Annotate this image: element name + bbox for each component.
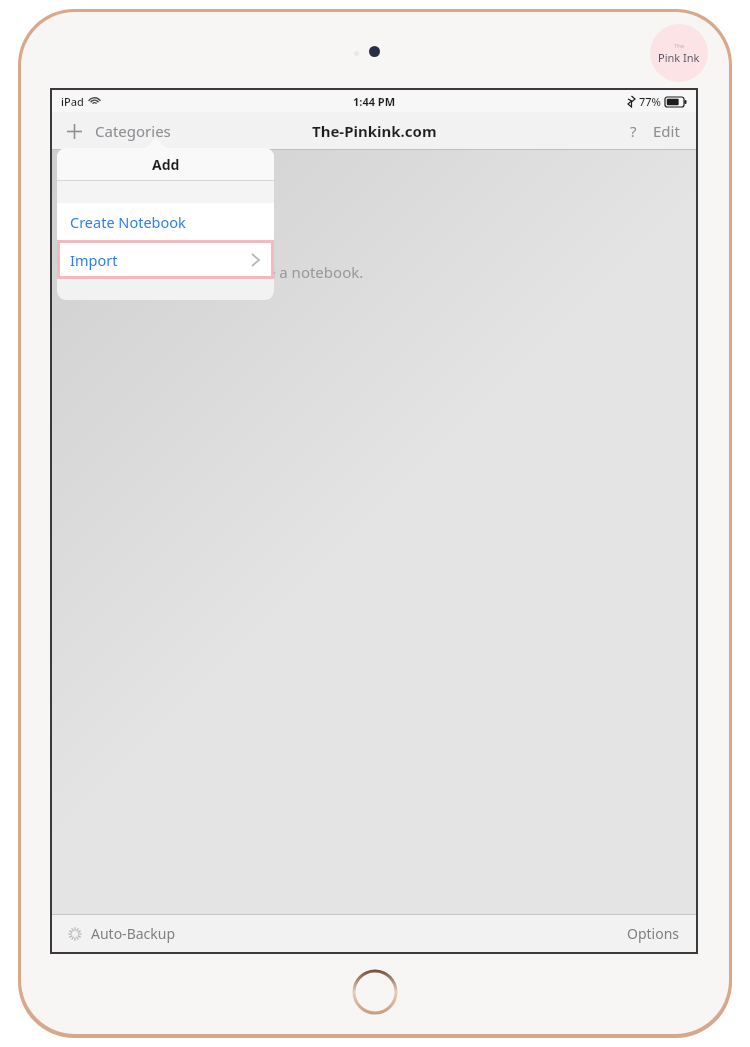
staticText: Categories: [95, 121, 171, 141]
other: Syncing: [68, 927, 82, 941]
staticText: Create Notebook: [70, 212, 186, 232]
staticText: Tap + to create a notebook.: [172, 262, 364, 282]
other: Add: [66, 123, 83, 140]
staticText: The-Pinkink.com: [312, 121, 437, 141]
staticText: iPad: [61, 94, 84, 109]
staticText: The: [674, 42, 685, 50]
button[interactable]: Create Notebook: [57, 203, 274, 240]
staticText: Edit: [653, 121, 680, 141]
button[interactable]: Edit: [649, 117, 684, 145]
staticText: Import: [70, 250, 118, 270]
button[interactable]: ?: [626, 117, 641, 145]
staticText: ?: [630, 121, 637, 141]
staticText: 1:44 PM: [353, 94, 396, 109]
staticText: Options: [627, 924, 680, 943]
staticText: Pink Ink: [658, 50, 700, 65]
button[interactable]: Add: [62, 117, 175, 145]
button[interactable]: Import: [60, 243, 271, 276]
button[interactable]: Options: [623, 920, 684, 947]
staticText: 77%: [639, 94, 661, 109]
button[interactable]: Syncing: [64, 920, 180, 947]
staticText: Add: [152, 155, 180, 174]
staticText: Auto-Backup: [91, 924, 176, 943]
